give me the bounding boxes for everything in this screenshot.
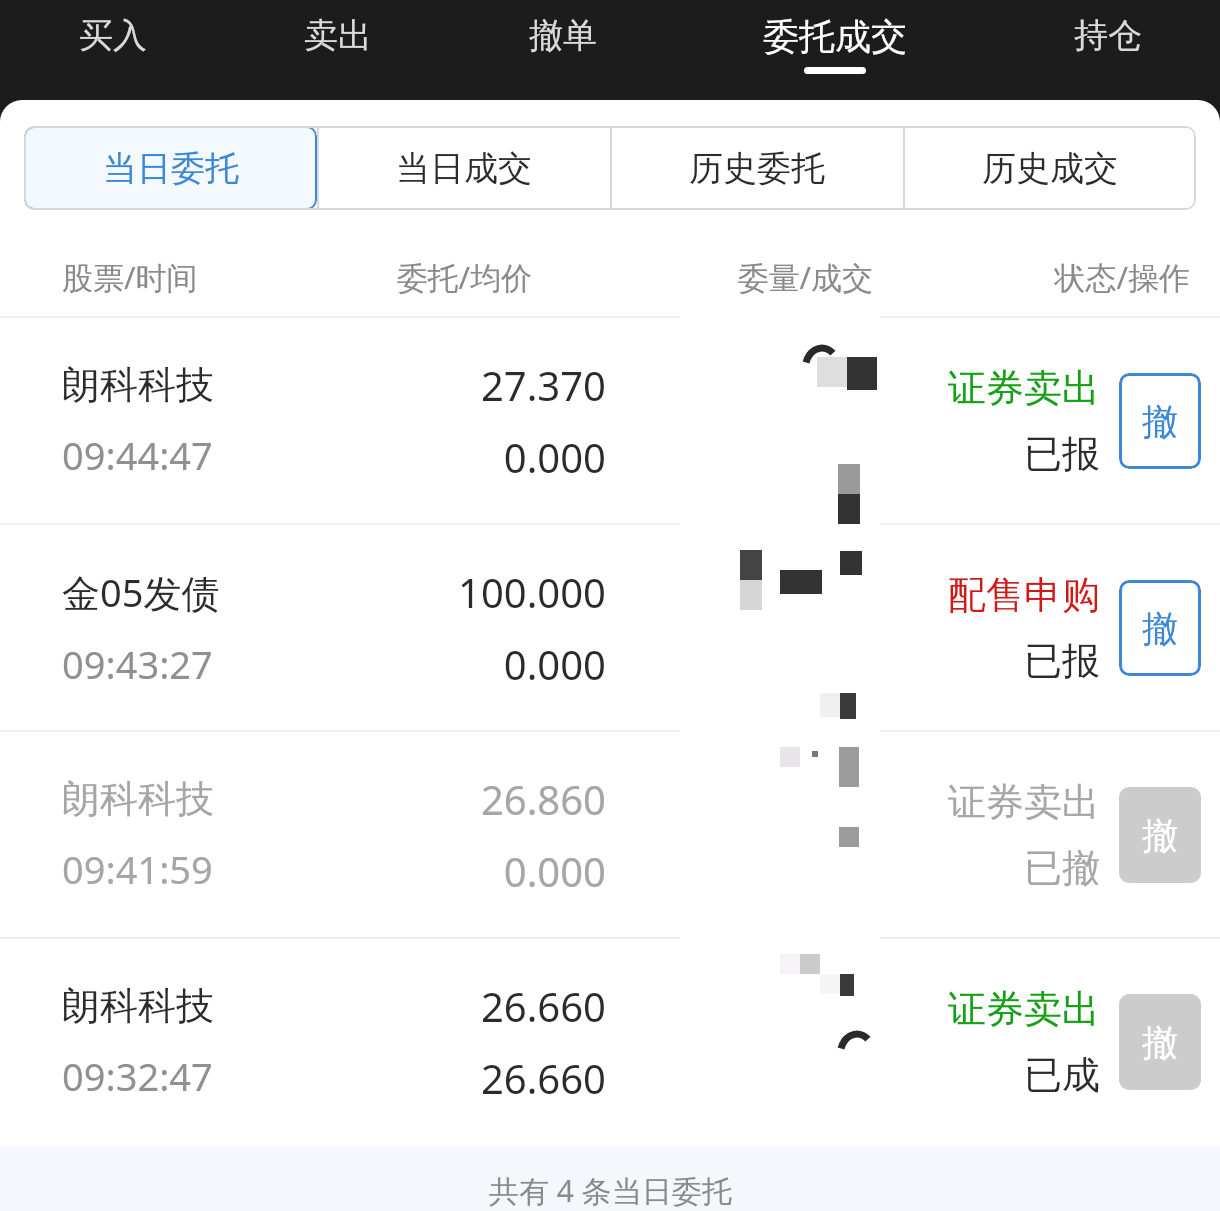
staticText: 当日成交 <box>396 147 532 190</box>
button[interactable]: 卖出 <box>225 0 450 100</box>
button[interactable]: 委托成交 <box>675 0 995 100</box>
staticText: 撤 <box>1142 399 1178 444</box>
staticText: 0.000 <box>503 430 606 484</box>
staticText: 已撤 <box>1024 844 1100 892</box>
staticText: 朗科科技 <box>62 775 214 823</box>
staticText: 朗科科技 <box>62 982 214 1030</box>
staticText: 26.860 <box>480 772 606 826</box>
button[interactable]: 撤单 <box>1119 580 1201 676</box>
button[interactable]: 买入 <box>0 0 225 100</box>
staticText: 配售申购 <box>948 571 1100 619</box>
button[interactable]: 撤单（不可用） <box>1119 994 1201 1090</box>
button[interactable]: 撤单 <box>1119 373 1201 469</box>
staticText: 09:32:47 <box>62 1050 213 1102</box>
button[interactable]: 朗科科技 <box>0 939 1220 1144</box>
staticText: 09:44:47 <box>62 429 213 481</box>
staticText: 100.000 <box>458 565 606 619</box>
button[interactable]: 当日委托 <box>24 126 317 210</box>
button[interactable]: 历史委托 <box>610 126 903 210</box>
staticText: 卖出 <box>304 14 372 57</box>
staticText: 撤 <box>1142 1020 1178 1065</box>
staticText: 股票/时间 <box>62 256 305 298</box>
staticText: 历史委托 <box>689 147 825 190</box>
staticText: 朗科科技 <box>62 361 214 409</box>
staticText: 已报 <box>1024 430 1100 478</box>
staticText: 26.660 <box>480 1051 606 1105</box>
button[interactable]: 持仓 <box>995 0 1220 100</box>
button[interactable]: 金05发债 <box>0 525 1220 730</box>
staticText: 0.000 <box>503 844 606 898</box>
staticText: 持仓 <box>1074 14 1142 57</box>
staticText: 委托成交 <box>763 14 907 59</box>
button[interactable]: 撤单（不可用） <box>1119 787 1201 883</box>
button[interactable]: 朗科科技 <box>0 318 1220 523</box>
staticText: 09:43:27 <box>62 638 213 690</box>
staticText: 已报 <box>1024 637 1100 685</box>
staticText: 27.370 <box>480 358 606 412</box>
staticText: 委量/成交 <box>610 256 873 298</box>
staticText: 26.660 <box>480 979 606 1033</box>
staticText: 0.000 <box>503 637 606 691</box>
staticText: 证券卖出 <box>948 364 1100 412</box>
button[interactable]: 撤单 <box>450 0 675 100</box>
staticText: 历史成交 <box>982 147 1118 190</box>
button[interactable]: 当日成交 <box>317 126 610 210</box>
staticText: 买入 <box>79 14 147 57</box>
staticText: 撤 <box>1142 606 1178 651</box>
staticText: 共有 4 条当日委托 <box>489 1170 732 1211</box>
button[interactable]: 历史成交 <box>903 126 1196 210</box>
staticText: 09:41:59 <box>62 843 213 895</box>
staticText: 委托/均价 <box>305 256 532 298</box>
staticText: 状态/操作 <box>915 256 1190 298</box>
staticText: 证券卖出 <box>948 985 1100 1033</box>
staticText: 当日委托 <box>103 147 239 190</box>
staticText: 撤单 <box>529 14 597 57</box>
staticText: 已成 <box>1024 1051 1100 1099</box>
staticText: 金05发债 <box>62 566 220 618</box>
button[interactable]: 朗科科技 <box>0 732 1220 937</box>
staticText: 证券卖出 <box>948 778 1100 826</box>
staticText: 撤 <box>1142 813 1178 858</box>
